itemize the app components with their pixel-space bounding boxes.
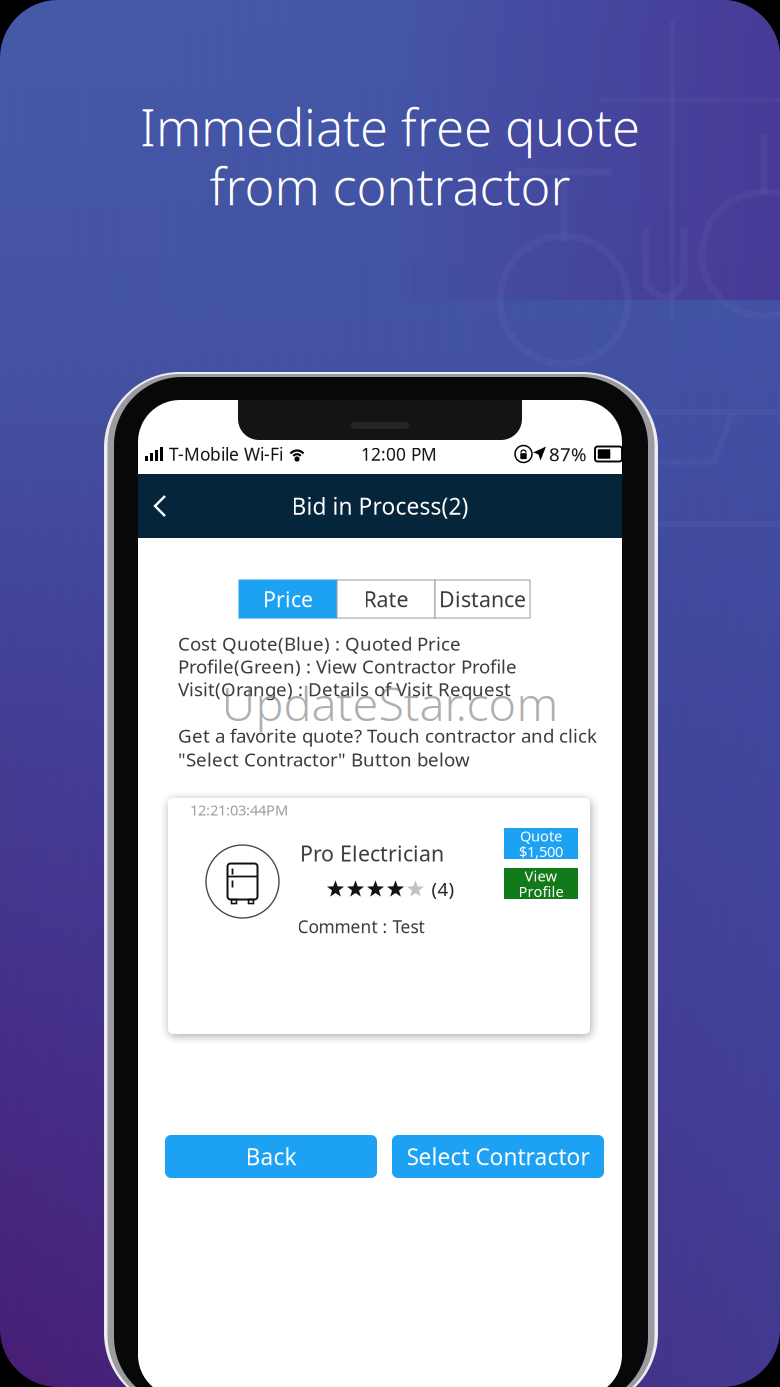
button[interactable]: Quote [504,828,578,859]
staticText: (4) [431,876,454,901]
staticText: Price [263,585,313,613]
button[interactable]: Back [165,1135,377,1178]
button[interactable]: Rate [337,580,435,618]
staticText: Get a favorite quote? Touch contractor a… [178,723,597,748]
staticText: from contractor [209,152,570,219]
button[interactable]: Price [239,580,337,618]
staticText: Rate [363,585,408,613]
staticText: Cost Quote(Blue) : Quoted Price [178,631,461,656]
staticText: Profile(Green) : View Contractor Profile [178,654,517,679]
staticText: "Select Contractor" Button below [178,747,470,772]
staticText: 87% [549,442,587,466]
button[interactable]: Distance [435,580,530,618]
staticText: Select Contractor [406,1141,589,1171]
staticText: 12:21:03:44PM [190,800,288,819]
staticText: 12:00 PM [361,442,437,465]
button[interactable]: View [504,868,578,899]
staticText: Bid in Process(2) [291,491,468,521]
button[interactable]: Select Contractor [392,1135,604,1178]
staticText: $1,500 [519,841,563,861]
staticText: Immediate free quote [140,93,640,160]
staticText: T-Mobile Wi-Fi [169,442,283,465]
staticText: Visit(Orange) : Details of Visit Request [178,677,511,701]
staticText: View [524,866,557,885]
staticText: UpdateStar.com [221,672,558,734]
staticText: Profile [518,881,563,901]
staticText: Quote [520,826,562,845]
staticText: Pro Electrician [300,839,444,867]
staticText: Distance [439,585,526,613]
button[interactable]: Back [138,474,184,538]
staticText: Back [245,1141,296,1171]
staticText: Comment : Test [297,915,424,938]
